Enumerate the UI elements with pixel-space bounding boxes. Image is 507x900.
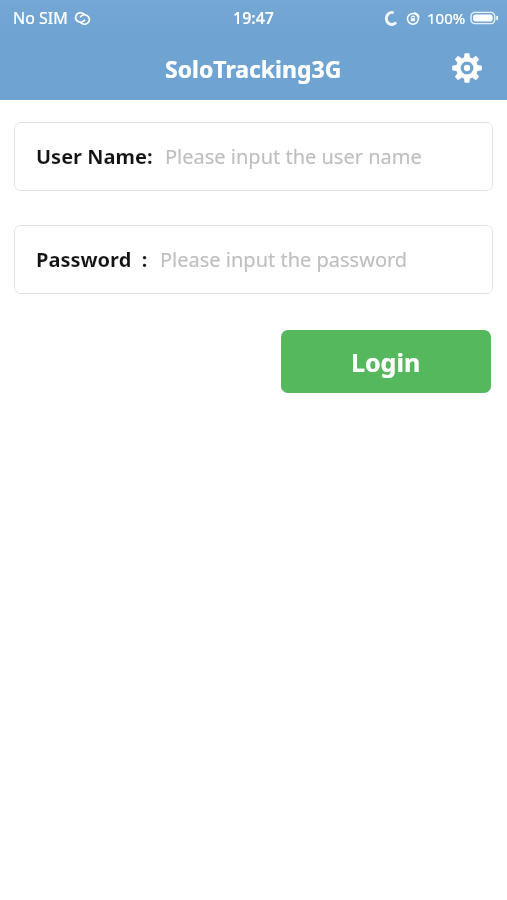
staticText: Login <box>351 345 421 379</box>
staticText: User Name: <box>36 143 153 170</box>
button[interactable]: Login <box>281 330 491 393</box>
staticText: 19:47 <box>233 7 274 29</box>
staticText: Please input the user name <box>165 143 422 170</box>
staticText: Password : <box>36 246 148 273</box>
staticText: 100% <box>427 8 466 28</box>
button[interactable]: Password : <box>14 225 493 294</box>
staticText: Please input the password <box>160 246 408 273</box>
button[interactable]: User Name: <box>14 122 493 191</box>
staticText: No SIM <box>13 7 68 29</box>
button[interactable]: Settings <box>447 48 487 88</box>
staticText: SoloTracking3G <box>165 53 342 84</box>
